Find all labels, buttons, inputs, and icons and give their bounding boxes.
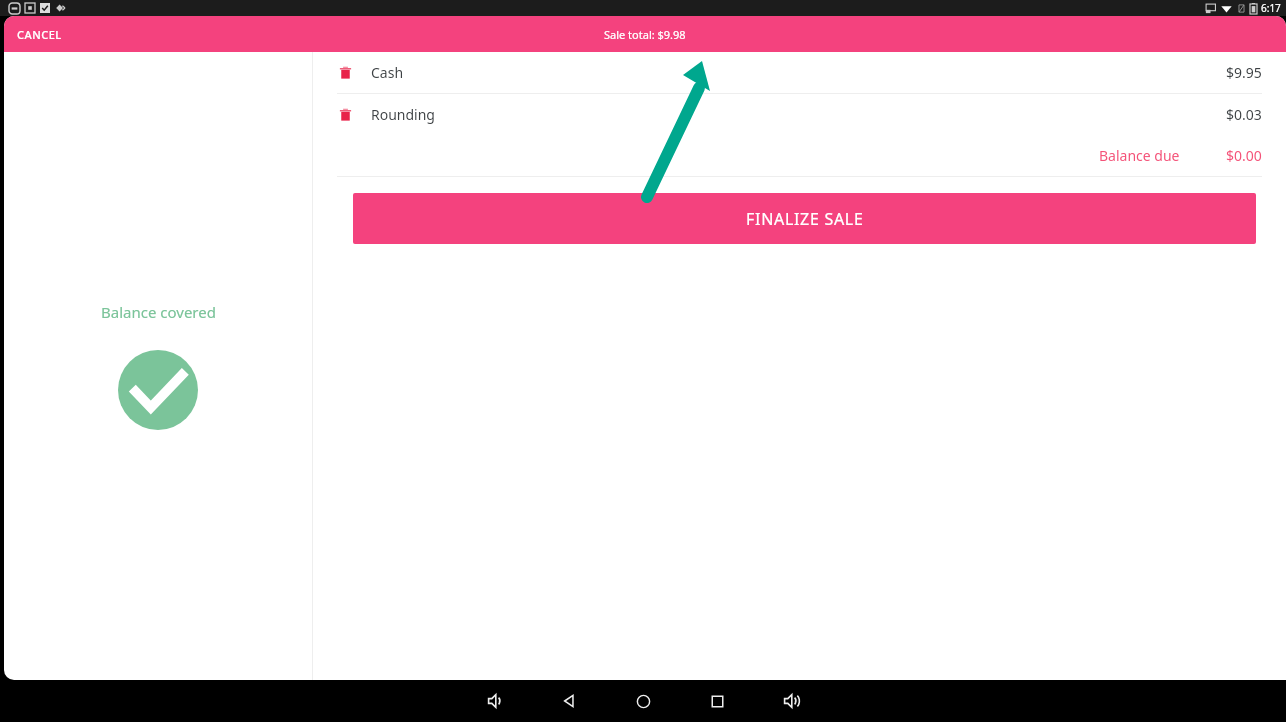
button[interactable]: Recent apps [680,680,754,722]
button[interactable]: Back [532,680,606,722]
button[interactable]: FINALIZE SALE [353,193,1256,244]
button[interactable]: Volume up [754,680,828,722]
staticText: $9.95 [1226,63,1262,82]
staticText: $0.00 [1226,146,1262,165]
other: Remove Rounding [337,106,354,123]
staticText: Balance covered [101,302,216,322]
staticText: FINALIZE SALE [746,208,864,230]
button[interactable]: CANCEL [4,18,75,51]
staticText: Cash [371,63,404,82]
staticText: Rounding [371,105,435,124]
button[interactable]: Remove Rounding [313,94,1286,135]
staticText: Sale total: $9.98 [604,27,686,42]
button[interactable]: Remove Cash [313,52,1286,93]
staticText: 6:17 [1261,1,1281,15]
button[interactable]: Volume down [458,680,532,722]
staticText: Balance due [1099,146,1180,165]
other: Remove Cash [337,64,354,81]
staticText: CANCEL [17,27,62,42]
staticText: $0.03 [1226,105,1262,124]
button[interactable]: Home [606,680,680,722]
